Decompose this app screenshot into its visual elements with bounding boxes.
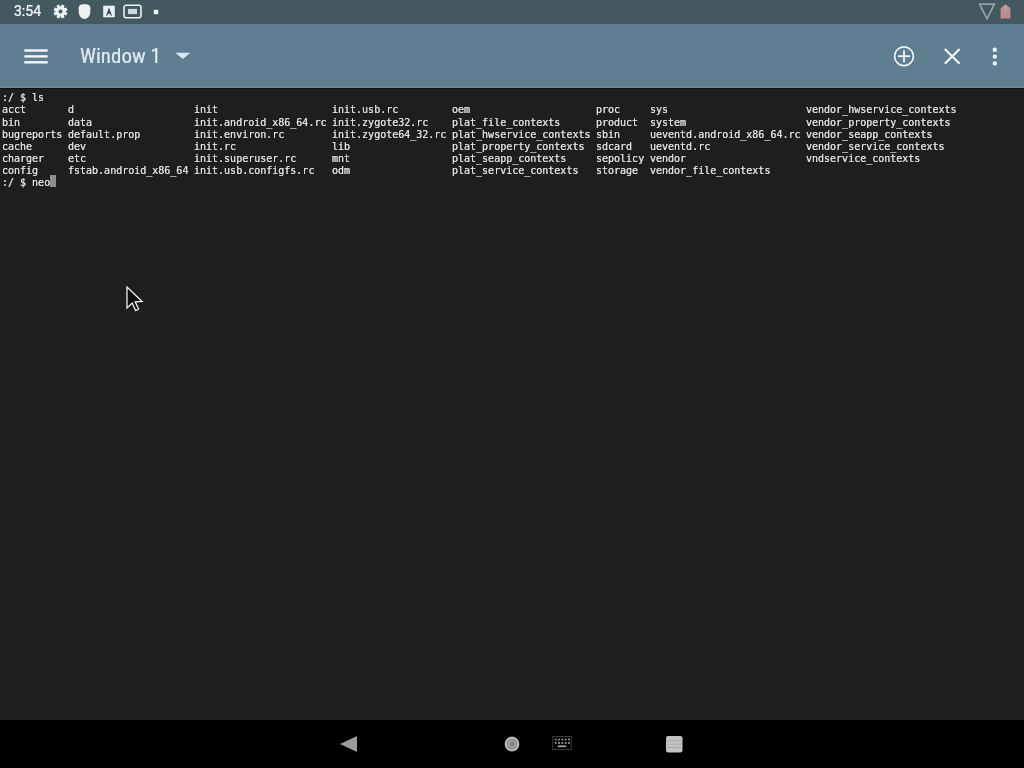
staticText: sepolicy — [596, 153, 645, 165]
staticText: cache — [2, 141, 33, 153]
staticText: init.superuser.rc — [194, 153, 297, 165]
staticText: :/ $ neo — [2, 177, 51, 189]
staticText: vendor_property_contexts — [806, 117, 951, 129]
staticText: Window 1 — [80, 44, 161, 69]
staticText: init.zygote64_32.rc — [332, 129, 447, 141]
staticText: plat_file_contexts — [452, 117, 561, 129]
staticText: mnt — [332, 153, 351, 165]
staticText: init.environ.rc — [194, 129, 285, 141]
staticText: vendor_hwservice_contexts — [806, 104, 957, 116]
button[interactable]: Window 1 — [78, 40, 192, 72]
staticText: fstab.android_x86_64 — [68, 165, 189, 177]
button[interactable]: More options — [971, 32, 1019, 80]
staticText: sbin — [596, 129, 621, 141]
staticText: plat_property_contexts — [452, 141, 585, 153]
staticText: vndservice_contexts — [806, 153, 921, 165]
button[interactable]: Show keyboard — [542, 723, 582, 763]
staticText: bugreports — [2, 129, 63, 141]
staticText: charger — [2, 153, 45, 165]
button[interactable]: Back — [325, 720, 373, 768]
staticText: sys — [650, 104, 669, 116]
staticText: dev — [68, 141, 87, 153]
staticText: init.rc — [194, 141, 237, 153]
staticText: oem — [452, 104, 471, 116]
staticText: product — [596, 117, 639, 129]
staticText: lib — [332, 141, 351, 153]
staticText: 3:54 — [14, 3, 41, 19]
staticText: acct — [2, 104, 27, 116]
staticText: config — [2, 165, 39, 177]
button[interactable]: New session — [880, 32, 928, 80]
staticText: storage — [596, 165, 639, 177]
staticText: plat_service_contexts — [452, 165, 579, 177]
staticText: vendor_service_contexts — [806, 141, 945, 153]
staticText: ueventd.rc — [650, 141, 711, 153]
button[interactable]: Home — [488, 720, 536, 768]
button[interactable]: Recent apps — [650, 720, 698, 768]
staticText: vendor — [650, 153, 687, 165]
staticText: sdcard — [596, 141, 633, 153]
staticText: init.usb.rc — [332, 104, 399, 116]
staticText: plat_hwservice_contexts — [452, 129, 591, 141]
staticText: init.zygote32.rc — [332, 117, 429, 129]
staticText: data — [68, 117, 93, 129]
staticText: init.usb.configfs.rc — [194, 165, 315, 177]
staticText: init — [194, 104, 219, 116]
staticText: vendor_seapp_contexts — [806, 129, 933, 141]
staticText: plat_seapp_contexts — [452, 153, 567, 165]
staticText: etc — [68, 153, 87, 165]
button[interactable]: Open navigation drawer — [12, 32, 60, 80]
staticText: proc — [596, 104, 621, 116]
staticText: odm — [332, 165, 351, 177]
staticText: vendor_file_contexts — [650, 165, 771, 177]
staticText: d — [68, 104, 75, 116]
staticText: default.prop — [68, 129, 141, 141]
staticText: bin — [2, 117, 21, 129]
staticText: :/ $ ls — [2, 92, 45, 104]
staticText: init.android_x86_64.rc — [194, 117, 327, 129]
staticText: system — [650, 117, 687, 129]
button[interactable]: Close session — [928, 32, 976, 80]
staticText: ueventd.android_x86_64.rc — [650, 129, 801, 141]
